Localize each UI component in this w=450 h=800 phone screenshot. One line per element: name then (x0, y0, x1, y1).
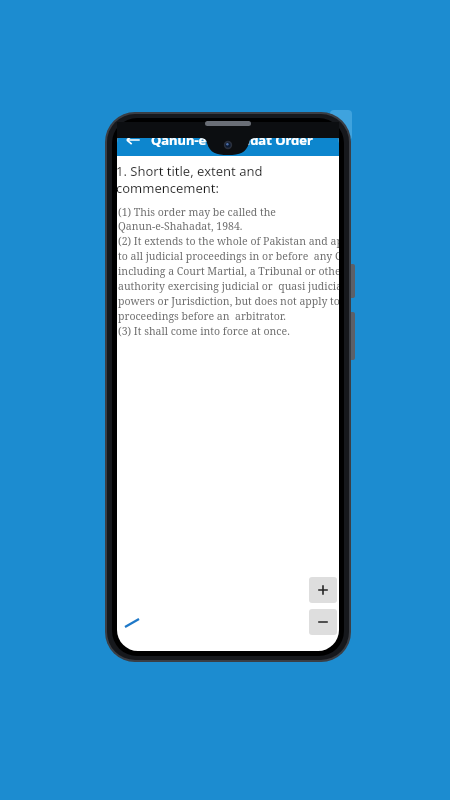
button[interactable]: Back (121, 128, 145, 152)
staticText: (1) This order may be called the Qanun-e… (118, 205, 339, 338)
button[interactable]: Zoom in (309, 577, 337, 603)
button[interactable]: Zoom out (309, 609, 337, 635)
staticText: 1. Short title, extent and commencement: (117, 162, 263, 197)
staticText: Qanun-e-Shahadat Order (151, 131, 313, 149)
